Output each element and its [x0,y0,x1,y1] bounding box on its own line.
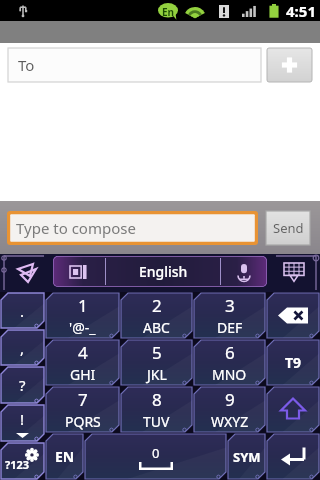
staticText: 4:51 [286,1,316,21]
staticText: DEF [217,318,243,337]
staticText: En [162,5,175,19]
button[interactable]: Period [1,293,44,328]
staticText: 9 [225,388,235,411]
staticText: 5 [152,341,162,364]
staticText: ABC [143,318,170,337]
button[interactable]: 3 [194,293,265,338]
staticText: MNO [212,365,247,384]
button[interactable]: Keyboard settings [267,254,320,292]
button[interactable]: SYM [228,434,265,479]
staticText: EN [55,447,75,466]
button[interactable]: Exclamation mark [1,405,44,441]
staticText: Send [273,219,304,237]
button[interactable]: EN [46,434,83,479]
button[interactable]: 5 [121,340,192,385]
button[interactable]: Send [266,211,310,245]
staticText: To [18,55,35,75]
staticText: T9 [285,353,302,372]
staticText: , [20,338,25,358]
staticText: 0 [152,444,160,462]
staticText: 7 [78,388,88,411]
staticText: 4 [78,341,88,364]
staticText: 8 [152,388,162,411]
button[interactable]: 2 [121,293,192,338]
staticText: WXYZ [211,412,249,431]
staticText: 6 [225,341,235,364]
button[interactable]: Hide keyboard [0,254,53,292]
button[interactable]: Shift [267,387,319,432]
button[interactable]: 8 [121,387,192,432]
button[interactable]: Add recipient [267,48,312,82]
button[interactable]: Type to compose [7,211,258,245]
staticText: 2 [152,294,162,317]
staticText: . [20,301,25,321]
button[interactable]: Enter [267,434,319,479]
button[interactable]: English [53,256,267,287]
button[interactable]: 6 [194,340,265,385]
button[interactable]: Comma [1,330,44,365]
button[interactable]: T9 [267,340,319,385]
staticText: '@-_ [69,318,96,337]
button[interactable]: 1 [46,293,119,338]
staticText: JKL [147,365,167,384]
button[interactable]: To [8,48,261,82]
button[interactable]: 7 [46,387,119,432]
button[interactable]: 9 [194,387,265,432]
staticText: GHI [70,365,96,384]
staticText: PQRS [65,412,101,431]
staticText: 1 [78,294,88,317]
staticText: English [139,262,188,281]
staticText: Type to compose [16,218,136,238]
staticText: ?123 [5,457,30,472]
staticText: ! [20,409,25,429]
button[interactable]: Symbols and settings [1,443,44,479]
staticText: ? [19,375,26,395]
staticText: TUV [143,412,170,431]
staticText: 3 [225,294,235,317]
button[interactable]: 4 [46,340,119,385]
button[interactable]: 0 [85,434,226,479]
staticText: SYM [233,448,261,466]
button[interactable]: Question mark [1,367,44,403]
button[interactable]: Backspace [267,293,319,338]
